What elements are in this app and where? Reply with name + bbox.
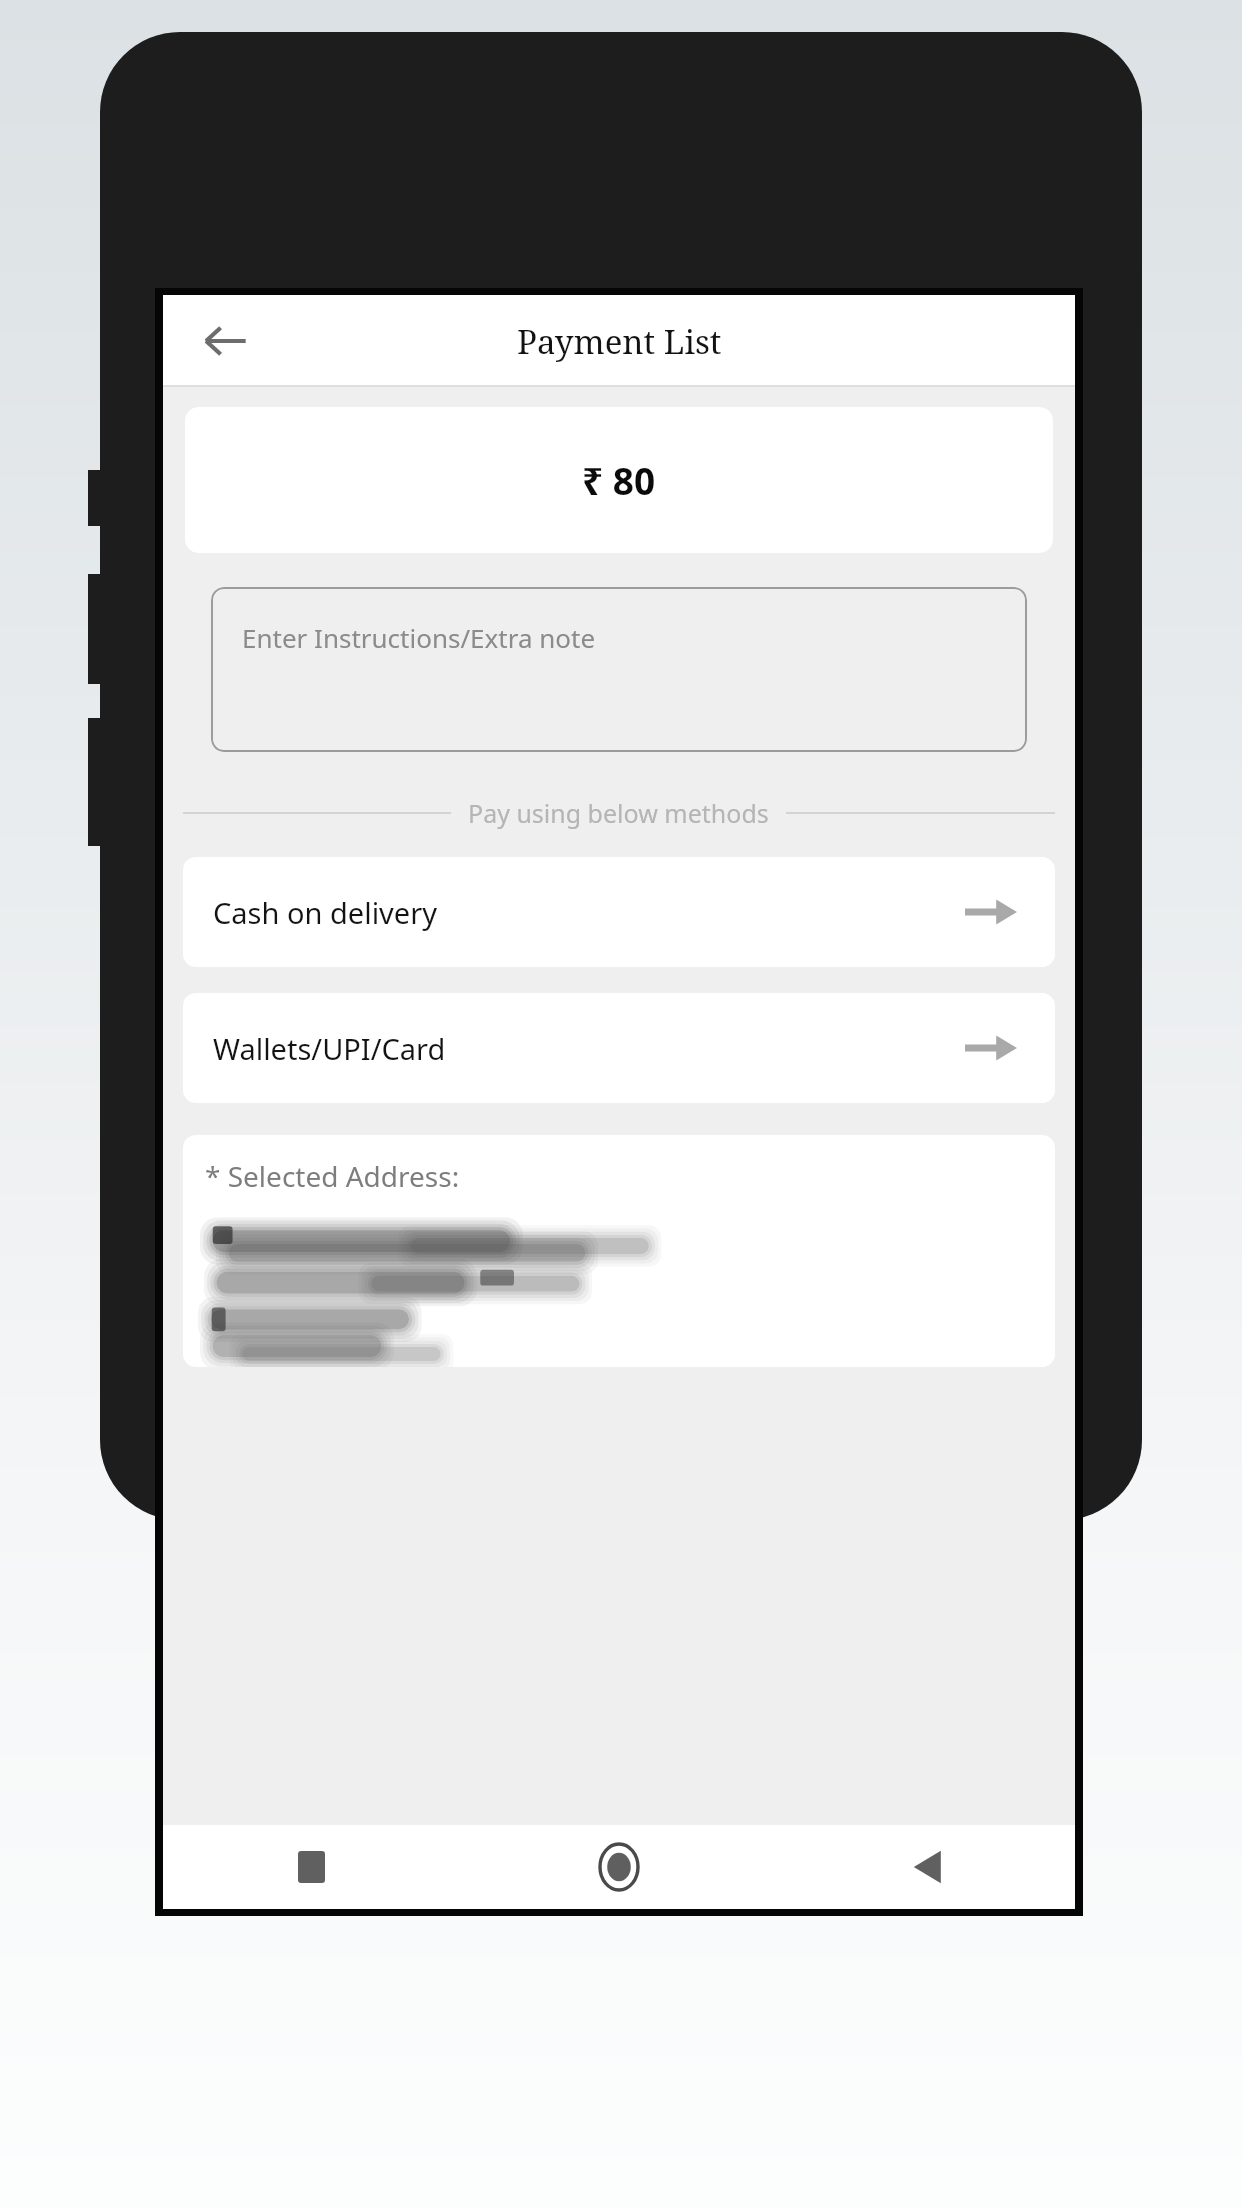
button[interactable]: Enter Instructions/Extra note [211, 587, 1027, 752]
button[interactable]: Wallets/UPI/Card [183, 993, 1055, 1103]
staticText: Cash on delivery [213, 893, 437, 932]
staticText: ₹ 80 [582, 455, 656, 505]
staticText: Enter Instructions/Extra note [242, 620, 596, 655]
button[interactable]: Back [891, 1831, 963, 1903]
staticText: Payment List [517, 319, 722, 364]
staticText: Pay using below methods [468, 796, 769, 830]
staticText: Wallets/UPI/Card [213, 1029, 446, 1068]
button[interactable]: Home [583, 1831, 655, 1903]
button[interactable]: ₹ 80 [185, 407, 1053, 553]
button[interactable]: Back [189, 305, 261, 377]
staticText: * Selected Address: [205, 1157, 460, 1195]
button[interactable]: * Selected Address: [183, 1135, 1055, 1367]
button[interactable]: Cash on delivery [183, 857, 1055, 967]
button[interactable]: Recent apps [275, 1831, 347, 1903]
